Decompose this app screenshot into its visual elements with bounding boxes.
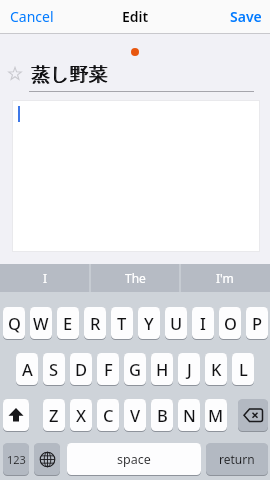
button[interactable]	[3, 399, 29, 431]
staticText: Y	[144, 312, 154, 334]
staticText: X	[76, 404, 87, 426]
button[interactable]: E	[57, 307, 79, 339]
staticText: 蒸し野菜	[31, 63, 108, 87]
button[interactable]: Z	[43, 399, 65, 431]
button[interactable]: Q	[3, 307, 25, 339]
button[interactable]: I	[0, 264, 90, 292]
staticText: Cancel	[10, 7, 54, 26]
button[interactable]: N	[178, 399, 200, 431]
staticText: F	[104, 358, 113, 380]
button[interactable]: 蒸し野菜	[31, 63, 108, 87]
button[interactable]: M	[205, 399, 227, 431]
staticText: 蒸し野菜	[32, 63, 109, 87]
button[interactable]: T	[111, 307, 133, 339]
staticText: I'm	[216, 270, 234, 286]
staticText: I	[200, 312, 206, 334]
button[interactable]: K	[205, 353, 227, 385]
staticText: V	[130, 404, 141, 426]
staticText: U	[170, 312, 183, 334]
button[interactable]: Save	[230, 7, 262, 26]
staticText: Q	[8, 312, 21, 334]
button[interactable]: Y	[138, 307, 160, 339]
staticText: 123	[7, 452, 26, 467]
button[interactable]: V	[124, 399, 146, 431]
staticText: O	[224, 312, 237, 334]
staticText: N	[183, 404, 196, 426]
staticText: Save	[230, 7, 262, 26]
staticText: D	[75, 358, 88, 380]
button[interactable]: A	[16, 353, 38, 385]
button[interactable]: H	[151, 353, 173, 385]
button[interactable]: return	[206, 443, 268, 475]
button[interactable]: I	[192, 307, 214, 339]
staticText: return	[219, 451, 255, 467]
staticText: Z	[49, 404, 59, 426]
staticText: H	[156, 358, 169, 380]
button[interactable]	[12, 100, 260, 252]
button[interactable]: F	[97, 353, 119, 385]
button[interactable]	[34, 443, 60, 475]
button[interactable]: 123	[3, 443, 29, 475]
staticText: R	[90, 312, 101, 334]
staticText: 蒸し野菜	[31, 63, 108, 87]
staticText: P	[252, 312, 263, 334]
button[interactable]: The	[90, 264, 180, 292]
button[interactable]: X	[70, 399, 92, 431]
staticText: L	[239, 358, 248, 380]
staticText: K	[211, 358, 222, 380]
button[interactable]: J	[178, 353, 200, 385]
button[interactable]: C	[97, 399, 119, 431]
staticText: M	[208, 404, 224, 426]
button[interactable]: O	[219, 307, 241, 339]
button[interactable]: P	[246, 307, 268, 339]
button[interactable]: R	[84, 307, 106, 339]
button[interactable]: space	[67, 443, 201, 475]
staticText: C	[103, 404, 114, 426]
button[interactable]: I'm	[180, 264, 270, 292]
button[interactable]: U	[165, 307, 187, 339]
button[interactable]	[238, 399, 268, 431]
staticText: I	[43, 270, 48, 286]
staticText: G	[129, 358, 141, 380]
button[interactable]: Cancel	[10, 7, 54, 26]
staticText: J	[187, 358, 192, 380]
staticText: space	[117, 451, 151, 468]
staticText: W	[33, 312, 49, 334]
staticText: B	[157, 404, 168, 426]
staticText: T	[117, 312, 127, 334]
button[interactable]: S	[43, 353, 65, 385]
button[interactable]: L	[232, 353, 254, 385]
button[interactable]: B	[151, 399, 173, 431]
staticText: The	[125, 270, 146, 286]
button[interactable]: W	[30, 307, 52, 339]
staticText: A	[22, 358, 33, 380]
staticText: Edit	[122, 7, 149, 26]
button[interactable]: D	[70, 353, 92, 385]
staticText: S	[49, 358, 59, 380]
button[interactable]: G	[124, 353, 146, 385]
staticText: E	[63, 312, 73, 334]
